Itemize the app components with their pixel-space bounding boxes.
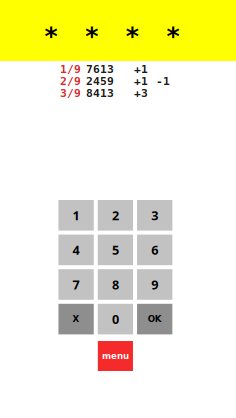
button[interactable]: OK bbox=[137, 304, 172, 334]
button[interactable]: 4 bbox=[58, 235, 94, 265]
button[interactable]: 2 bbox=[98, 200, 133, 231]
button[interactable]: menu bbox=[98, 341, 133, 371]
button[interactable]: 7 bbox=[58, 269, 94, 300]
staticText: 7 bbox=[73, 276, 80, 293]
staticText: 2459 bbox=[86, 74, 114, 88]
button[interactable]: X bbox=[58, 304, 94, 334]
staticText: -1 bbox=[156, 74, 170, 88]
staticText: 5 bbox=[112, 241, 119, 259]
staticText: 2/9 bbox=[60, 74, 81, 88]
staticText: 0 bbox=[112, 310, 119, 328]
staticText: * bbox=[44, 21, 59, 50]
button[interactable]: 9 bbox=[137, 269, 172, 300]
staticText: 3/9 bbox=[60, 86, 81, 100]
staticText: 7613 bbox=[86, 62, 114, 76]
staticText: 8413 bbox=[86, 86, 114, 100]
staticText: 1/9 bbox=[60, 62, 81, 76]
staticText: 2 bbox=[112, 207, 119, 224]
staticText: 8 bbox=[112, 276, 119, 293]
button[interactable]: 3 bbox=[137, 200, 172, 231]
button[interactable]: 6 bbox=[137, 235, 172, 265]
staticText: 6 bbox=[151, 241, 158, 259]
button[interactable]: 8 bbox=[98, 269, 133, 300]
staticText: +1 bbox=[134, 74, 148, 88]
staticText: 4 bbox=[73, 241, 80, 259]
staticText: 1 bbox=[73, 207, 80, 224]
staticText: * bbox=[125, 21, 140, 50]
staticText: 9 bbox=[151, 276, 158, 293]
staticText: OK bbox=[148, 314, 162, 324]
staticText: X bbox=[73, 314, 80, 324]
button[interactable]: 5 bbox=[98, 235, 133, 265]
staticText: 3 bbox=[151, 207, 158, 224]
staticText: +1 bbox=[134, 62, 148, 76]
staticText: menu bbox=[102, 351, 129, 361]
staticText: * bbox=[84, 21, 99, 50]
staticText: * bbox=[165, 21, 180, 50]
staticText: +3 bbox=[134, 86, 148, 100]
button[interactable]: 1 bbox=[58, 200, 94, 231]
button[interactable]: 0 bbox=[98, 304, 133, 334]
